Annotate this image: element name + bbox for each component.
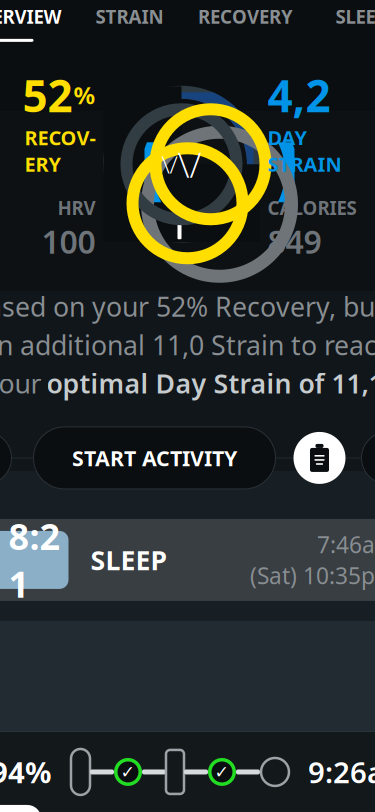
staticText: OVERVIEW (0, 4, 61, 29)
staticText: % (73, 79, 95, 111)
staticText: 94% (0, 752, 51, 791)
button[interactable]: STRAIN (71, 0, 187, 46)
staticText: 100 (41, 220, 95, 263)
staticText: ✓ (120, 762, 135, 782)
staticText: an additional 11,0 Strain to reach (0, 327, 375, 362)
staticText: START ACTIVITY (72, 444, 237, 472)
staticText: optimal Day Strain of 11,1. (46, 365, 375, 401)
staticText: SLEEP (90, 542, 167, 578)
staticText: RECOVERY (198, 4, 293, 29)
button[interactable]: START ACTIVITY (33, 427, 275, 489)
staticText: \/ (177, 141, 201, 187)
staticText: 7:46am (317, 529, 375, 559)
button[interactable]: Expand (0, 432, 11, 484)
button[interactable]: OVERVIEW (0, 0, 71, 46)
staticText: 9:26am (308, 752, 375, 791)
button[interactable]: SLEEP (303, 0, 375, 46)
staticText: CALORIES (267, 195, 356, 220)
staticText: STRAIN (95, 4, 163, 29)
staticText: SLEEP (335, 4, 375, 29)
staticText: 4,2 (267, 66, 330, 124)
staticText: (Sat) 10:35pm (250, 560, 375, 590)
staticText: Based on your 52% Recovery, build (0, 289, 375, 324)
staticText: 52 (22, 66, 72, 124)
staticText: DAY STRAIN (267, 124, 341, 177)
button[interactable]: 8:21 (0, 519, 375, 601)
staticText: 8:21 (8, 512, 60, 608)
staticText: RECOVERY (24, 124, 95, 177)
staticText: ✓ (214, 762, 229, 782)
button[interactable]: Log activity (293, 432, 345, 484)
staticText: \/ (161, 148, 177, 180)
button[interactable]: RECOVERY (187, 0, 303, 46)
staticText: HRV (57, 195, 95, 220)
staticText: your (0, 365, 41, 401)
button[interactable]: Add activity (359, 427, 375, 489)
staticText: 849 (267, 220, 321, 263)
